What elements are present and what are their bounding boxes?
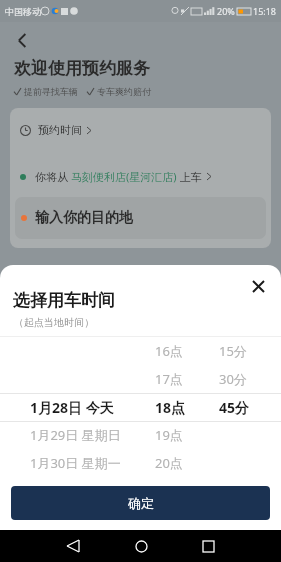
button[interactable]: Back (58, 531, 88, 561)
button[interactable]: 1月29日 星期日 (0, 421, 281, 449)
button[interactable]: Back (6, 24, 38, 56)
staticText: 45分 (219, 398, 250, 417)
staticText: 欢迎使用预约服务 (14, 58, 150, 79)
button[interactable]: 1月28日 今天 (0, 393, 281, 421)
staticText: 马刻便利店(星河汇店) (71, 169, 177, 184)
staticText: 30分 (219, 370, 247, 388)
button[interactable]: Home (126, 531, 156, 561)
staticText: 15分 (219, 342, 247, 360)
staticText: 输入你的目的地 (35, 209, 133, 227)
staticText: 20% (217, 5, 235, 17)
button[interactable]: Recents (193, 531, 223, 561)
button[interactable]: 1月30日 星期一 (0, 449, 281, 477)
button[interactable]: 16点 (0, 337, 281, 365)
staticText: 1月29日 星期日 (30, 426, 121, 444)
staticText: 18点 (155, 398, 186, 417)
staticText: 16点 (155, 342, 183, 360)
staticText: 1月30日 星期一 (30, 454, 121, 472)
staticText: 提前寻找车辆 (24, 86, 78, 97)
staticText: 19点 (155, 426, 183, 444)
button[interactable]: 预约时间 (20, 123, 91, 137)
staticText: 17点 (155, 370, 183, 388)
staticText: 专车爽约赔付 (97, 86, 151, 97)
staticText: 确定 (128, 495, 154, 511)
staticText: 上车 (177, 169, 202, 184)
staticText: 1月28日 今天 (30, 398, 114, 417)
staticText: 20点 (155, 454, 183, 472)
staticText: 预约时间 (38, 123, 82, 137)
button[interactable]: 17点 (0, 365, 281, 393)
button[interactable]: Close (241, 269, 275, 303)
staticText: 你将从 (35, 169, 71, 184)
button[interactable]: 你将从 (20, 169, 211, 184)
staticText: 中国移动 (5, 6, 41, 17)
button[interactable]: 确定 (11, 486, 270, 520)
button[interactable]: 输入你的目的地 (15, 197, 266, 239)
staticText: 15:18 (253, 5, 277, 17)
staticText: 选择用车时间 (13, 290, 115, 311)
staticText: （起点当地时间） (14, 316, 94, 329)
